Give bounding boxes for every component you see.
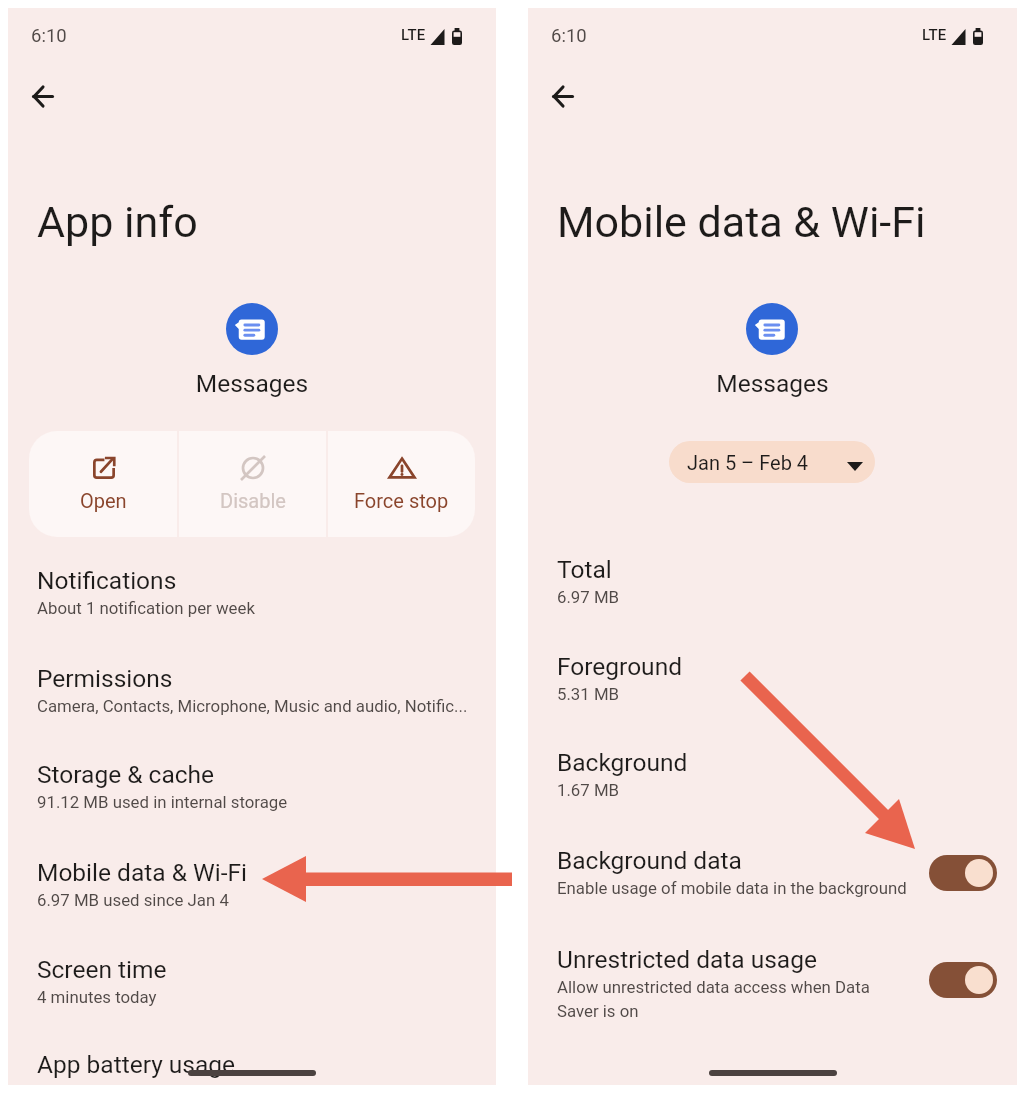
staticText: Force stop	[354, 489, 449, 512]
staticText: Storage & cache	[37, 760, 215, 789]
button[interactable]: Mobile data & Wi-Fi	[37, 858, 525, 910]
button[interactable]: Disable	[179, 431, 326, 537]
button[interactable]: App battery usage	[37, 1050, 525, 1079]
staticText: Messages	[528, 369, 1017, 398]
staticText: Mobile data & Wi-Fi	[37, 858, 247, 887]
staticText: App battery usage	[37, 1050, 236, 1079]
staticText: Enable usage of mobile data in the backg…	[557, 878, 907, 898]
staticText: 1.67 MB	[557, 780, 620, 800]
button[interactable]: Unrestricted data usage	[929, 962, 997, 998]
staticText: Camera, Contacts, Microphone, Music and …	[37, 696, 468, 716]
button[interactable]: Foreground	[557, 652, 1024, 704]
staticText: 4 minutes today	[37, 987, 157, 1007]
staticText: LTE	[401, 26, 426, 44]
button[interactable]: Notifications	[37, 566, 525, 618]
button[interactable]: Screen time	[37, 955, 525, 1007]
staticText: 6:10	[31, 25, 67, 47]
staticText: 6.97 MB	[557, 587, 620, 607]
staticText: Allow unrestricted data access when Data…	[557, 977, 907, 1021]
staticText: Open	[80, 489, 127, 512]
staticText: About 1 notification per week	[37, 598, 255, 618]
staticText: 6:10	[551, 25, 587, 47]
staticText: Unrestricted data usage	[557, 945, 817, 974]
staticText: LTE	[922, 26, 947, 44]
staticText: 91.12 MB used in internal storage	[37, 792, 288, 812]
staticText: 5.31 MB	[557, 684, 620, 704]
button[interactable]: Background data	[929, 855, 997, 891]
staticText: Messages	[8, 369, 496, 398]
button[interactable]: Background data	[528, 846, 1017, 898]
staticText: App info	[37, 197, 198, 247]
button[interactable]: Jan 5 – Feb 4	[669, 441, 875, 483]
staticText: Notifications	[37, 566, 177, 595]
button[interactable]: Open	[29, 431, 177, 537]
button[interactable]: Background	[557, 748, 1024, 800]
button[interactable]: Total	[557, 555, 1024, 607]
staticText: Background	[557, 748, 688, 777]
staticText: Foreground	[557, 652, 682, 681]
staticText: Disable	[220, 489, 286, 512]
staticText: Permissions	[37, 664, 173, 693]
staticText: Total	[557, 555, 612, 584]
button[interactable]: Back	[26, 74, 74, 122]
button[interactable]: Unrestricted data usage	[528, 945, 1017, 1021]
button[interactable]: Back	[546, 74, 594, 122]
staticText: Jan 5 – Feb 4	[687, 451, 809, 474]
staticText: 6.97 MB used since Jan 4	[37, 890, 229, 910]
button[interactable]: Storage & cache	[37, 760, 525, 812]
staticText: Mobile data & Wi-Fi	[557, 197, 926, 247]
staticText: Background data	[557, 846, 742, 875]
button[interactable]: Force stop	[328, 431, 475, 537]
staticText: Screen time	[37, 955, 167, 984]
button[interactable]: Permissions	[37, 664, 525, 716]
